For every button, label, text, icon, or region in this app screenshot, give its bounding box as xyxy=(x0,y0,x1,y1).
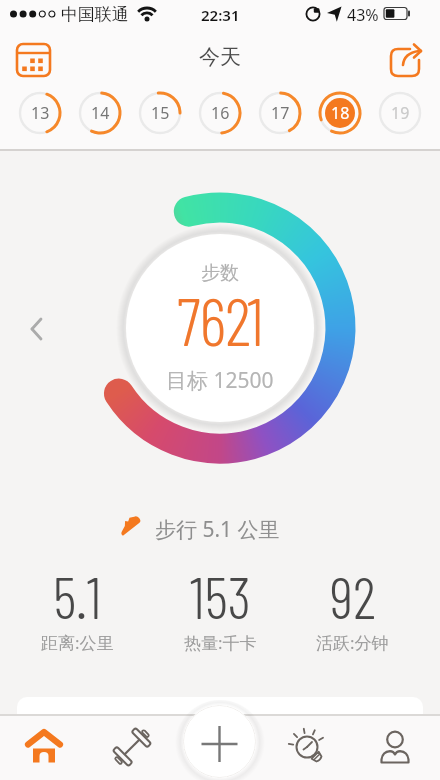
staticText: 15 xyxy=(151,102,170,124)
button[interactable] xyxy=(284,723,332,771)
button[interactable] xyxy=(20,722,68,768)
button[interactable]: 14 xyxy=(72,85,128,141)
staticText: 步数 xyxy=(201,261,239,285)
staticText: 13 xyxy=(31,102,50,124)
staticText: 22:31 xyxy=(201,5,240,25)
button[interactable] xyxy=(386,38,430,80)
button[interactable] xyxy=(108,723,156,771)
staticText: 5.1 xyxy=(53,561,102,631)
staticText: 中国联通 xyxy=(61,4,129,25)
staticText: 热量:千卡 xyxy=(184,631,257,654)
button[interactable]: 17 xyxy=(252,85,308,141)
button[interactable]: 16 xyxy=(192,85,248,141)
staticText: 目标 12500 xyxy=(166,366,274,395)
button[interactable]: 13 xyxy=(12,85,68,141)
button[interactable] xyxy=(371,718,419,766)
button[interactable]: 19 xyxy=(372,85,428,141)
staticText: 距离:公里 xyxy=(41,631,114,654)
button[interactable]: 步行 5.1 公里 xyxy=(114,509,298,549)
staticText: 活跃:分钟 xyxy=(316,631,389,654)
button[interactable]: 18 xyxy=(312,85,368,141)
staticText: 43% xyxy=(347,4,379,26)
staticText: 19 xyxy=(391,102,410,124)
button[interactable] xyxy=(12,40,54,80)
staticText: 14 xyxy=(91,102,110,124)
button[interactable]: 15 xyxy=(132,85,188,141)
staticText: 92 xyxy=(330,561,376,631)
button[interactable] xyxy=(183,705,256,778)
staticText: 153 xyxy=(190,561,251,631)
staticText: 16 xyxy=(211,102,230,124)
staticText: 17 xyxy=(271,102,290,124)
staticText: 18 xyxy=(331,102,350,124)
staticText: 7621 xyxy=(177,280,263,359)
staticText: 今天 xyxy=(199,44,241,70)
staticText: 步行 5.1 公里 xyxy=(155,515,280,544)
button[interactable] xyxy=(20,312,50,346)
